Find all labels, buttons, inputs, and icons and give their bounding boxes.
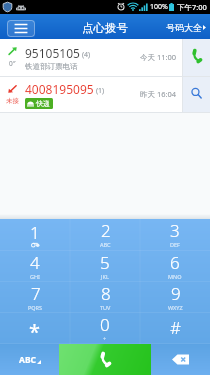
staticText: ABC [100,241,111,248]
button[interactable]: 9 [140,282,210,313]
staticText: WXYZ [168,304,183,311]
staticText: GHI [30,273,40,280]
staticText: 铁道部订票电话 [25,62,78,71]
staticText: # [170,316,181,339]
staticText: 点心拨号 [82,21,128,35]
staticText: TUV [100,304,111,311]
staticText: ABC [19,354,36,366]
button[interactable]: 3 [140,219,210,251]
button[interactable]: 0″ [0,39,140,76]
staticText: 0″ [9,59,16,68]
staticText: 9 [171,282,181,305]
staticText: 6 [170,251,180,274]
staticText: 100% [150,2,168,12]
staticText: PQRS [28,304,43,311]
staticText: 4 [30,251,40,274]
staticText: MNO [168,273,182,280]
staticText: 4008195095 [25,81,94,97]
staticText: 3 [170,219,180,242]
staticText: 今天 11:00 [140,52,177,62]
staticText: + [103,335,107,342]
staticText: 7 [31,282,41,305]
button[interactable]: Menu [7,20,35,37]
button[interactable]: ABC [0,344,59,375]
button[interactable]: 1 [0,219,70,251]
button[interactable]: 号码大全 [160,16,210,37]
button[interactable]: 7 [0,282,70,313]
staticText: (4) [82,50,91,60]
staticText: 2 [101,219,111,242]
staticText: 下午7:00 [177,2,207,12]
staticText: (1) [96,86,105,96]
staticText: 1 [30,221,40,244]
button[interactable]: * [0,313,70,344]
staticText: 0 [100,313,110,336]
button[interactable]: 8 [70,282,140,313]
staticText: JKL [101,273,109,280]
staticText: 号码大全 [166,22,202,33]
button[interactable]: Call [183,39,210,76]
staticText: * [29,318,41,345]
staticText: 5 [100,251,110,274]
staticText: 95105105 [25,45,80,61]
button[interactable]: 2 [70,219,140,251]
button[interactable]: Search [183,77,210,112]
staticText: 未接 [6,97,19,105]
button[interactable]: 未接 [0,77,140,112]
button[interactable]: 4 [0,251,70,282]
button[interactable]: 5 [70,251,140,282]
staticText: DEF [170,241,180,248]
staticText: 8 [101,282,111,305]
staticText: 昨天 16:04 [140,89,177,99]
button[interactable]: # [140,313,210,344]
staticText: 快递 [36,99,50,108]
button[interactable]: 0 [70,313,140,344]
button[interactable]: Backspace [151,344,210,375]
button[interactable]: Call [59,344,151,375]
button[interactable]: 6 [140,251,210,282]
